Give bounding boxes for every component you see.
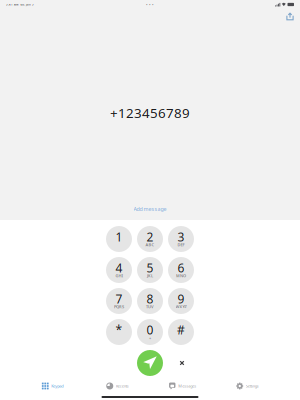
- staticText: Recents: [116, 383, 129, 389]
- staticText: 2: [146, 229, 153, 245]
- button[interactable]: 2: [137, 226, 163, 252]
- staticText: JKL: [147, 273, 153, 278]
- button[interactable]: Share: [286, 12, 294, 21]
- staticText: 4: [115, 260, 122, 276]
- button[interactable]: Recents: [85, 378, 150, 394]
- staticText: 7: [115, 291, 122, 307]
- button[interactable]: 9: [168, 288, 194, 314]
- button[interactable]: 3: [168, 226, 194, 252]
- button[interactable]: 7: [106, 288, 132, 314]
- button[interactable]: *: [106, 319, 132, 345]
- staticText: 9: [177, 291, 184, 307]
- staticText: 5: [146, 260, 153, 276]
- button[interactable]: 1: [106, 226, 132, 252]
- button[interactable]: Delete: [175, 356, 189, 370]
- staticText: +: [149, 335, 151, 340]
- button[interactable]: Settings: [215, 378, 280, 394]
- staticText: 6: [177, 260, 184, 276]
- staticText: TUV: [146, 304, 154, 309]
- staticText: Settings: [246, 383, 259, 389]
- staticText: • • •: [146, 2, 154, 7]
- button[interactable]: Keypad: [20, 378, 85, 394]
- staticText: 1: [115, 229, 122, 245]
- staticText: WXYZ: [175, 304, 186, 309]
- button[interactable]: Add message: [133, 204, 166, 214]
- button[interactable]: 0: [137, 319, 163, 345]
- staticText: Add message: [133, 205, 166, 213]
- staticText: GHI: [115, 273, 122, 278]
- button[interactable]: #: [168, 319, 194, 345]
- staticText: 0: [146, 322, 153, 338]
- staticText: 8: [146, 291, 153, 307]
- button[interactable]: Messages: [150, 378, 215, 394]
- staticText: ABC: [145, 242, 154, 247]
- button[interactable]: 5: [137, 257, 163, 283]
- staticText: Keypad: [51, 383, 63, 389]
- staticText: MNO: [176, 273, 186, 278]
- staticText: DEF: [177, 242, 184, 247]
- staticText: #: [177, 322, 185, 338]
- staticText: +123456789: [110, 104, 190, 122]
- button[interactable]: 8: [137, 288, 163, 314]
- button[interactable]: 4: [106, 257, 132, 283]
- button[interactable]: 6: [168, 257, 194, 283]
- staticText: *: [115, 322, 122, 338]
- staticText: PQRS: [114, 304, 124, 309]
- staticText: 3: [177, 229, 184, 245]
- button[interactable]: Call: [137, 350, 163, 376]
- staticText: Messages: [178, 383, 196, 389]
- staticText: 9:41 AM Tue Jan 9: [6, 3, 34, 6]
